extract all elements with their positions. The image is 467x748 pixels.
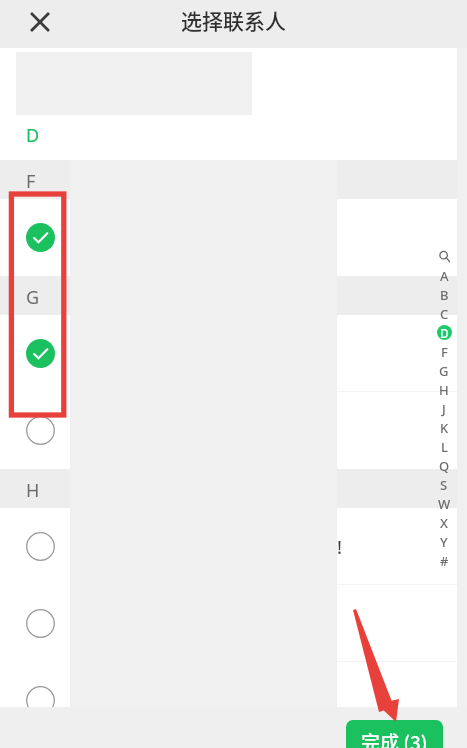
staticText: 完成 (3) [361,728,428,748]
staticText: H [26,478,40,503]
staticText: D [26,123,40,148]
button[interactable]: L [434,437,454,456]
button[interactable]: D [434,323,454,342]
button[interactable]: Q [434,456,454,475]
staticText: Q [439,457,450,475]
staticText: G [439,362,449,380]
button[interactable]: Search [434,247,454,266]
button[interactable] [0,508,467,585]
button[interactable]: B [434,285,454,304]
button[interactable]: # [434,551,454,570]
button[interactable] [0,199,467,276]
staticText: ! [337,535,342,560]
staticText: X [440,514,448,532]
button[interactable]: W [434,494,454,513]
staticText: 选择联系人 [181,5,286,35]
button[interactable]: F [434,342,454,361]
staticText: C [440,305,449,323]
button[interactable]: A [434,266,454,285]
button[interactable]: K [434,418,454,437]
staticText: Y [440,533,448,551]
staticText: B [440,286,449,304]
button[interactable] [0,392,467,469]
staticText: S [440,476,448,494]
staticText: A [440,267,449,285]
button[interactable]: Y [434,532,454,551]
staticText: K [440,419,449,437]
button[interactable] [0,585,467,662]
staticText: F [441,343,448,361]
button[interactable]: C [434,304,454,323]
button[interactable]: J [434,399,454,418]
button[interactable]: 完成 (3) [346,720,443,748]
button[interactable]: H [434,380,454,399]
staticText: G [26,285,40,310]
button[interactable]: G [434,361,454,380]
button[interactable] [0,315,467,392]
button[interactable]: S [434,475,454,494]
button[interactable]: Close [24,6,56,38]
staticText: H [439,381,449,399]
staticText: # [440,552,449,570]
staticText: J [442,400,446,418]
staticText: F [26,169,36,194]
button[interactable] [0,662,467,739]
staticText: L [441,438,448,456]
staticText: D [440,325,449,340]
button[interactable]: X [434,513,454,532]
staticText: W [438,495,451,513]
